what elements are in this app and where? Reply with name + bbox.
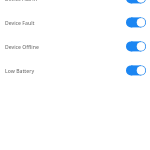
staticText: Low Battery (5, 68, 35, 75)
staticText: Device Alarm (5, 0, 37, 3)
button[interactable]: Device Offline (0, 35, 150, 59)
button[interactable]: Device Alarm notifications, on (126, 0, 146, 4)
button[interactable]: Low Battery (0, 59, 150, 83)
button[interactable]: Low Battery notifications, on (126, 65, 146, 76)
staticText: Device Fault (5, 20, 35, 27)
button[interactable]: Device Fault (0, 11, 150, 35)
button[interactable]: Device Offline notifications, on (126, 41, 146, 52)
button[interactable]: Device Fault notifications, on (126, 17, 146, 28)
staticText: Device Offline (5, 44, 39, 51)
button[interactable]: Device Alarm (0, 0, 150, 11)
